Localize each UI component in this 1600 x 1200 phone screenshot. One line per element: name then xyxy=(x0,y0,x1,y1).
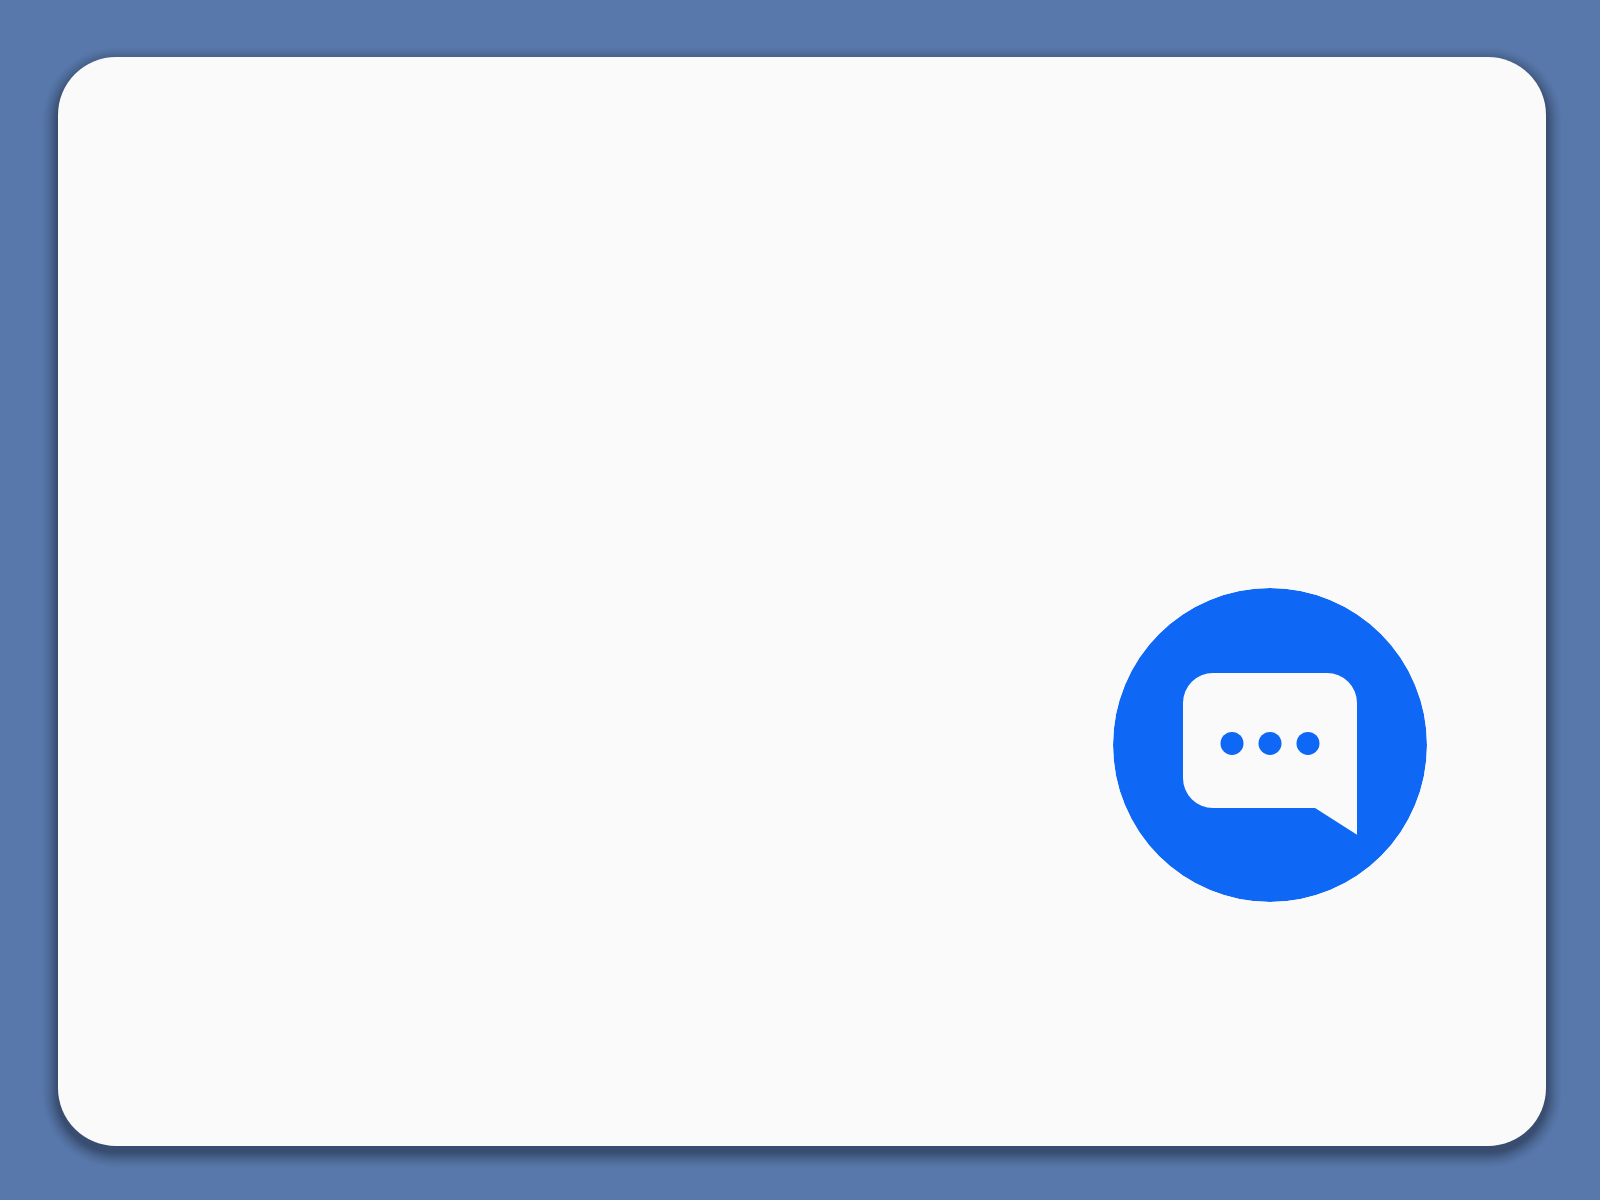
button[interactable]: Open chat xyxy=(1113,588,1427,902)
